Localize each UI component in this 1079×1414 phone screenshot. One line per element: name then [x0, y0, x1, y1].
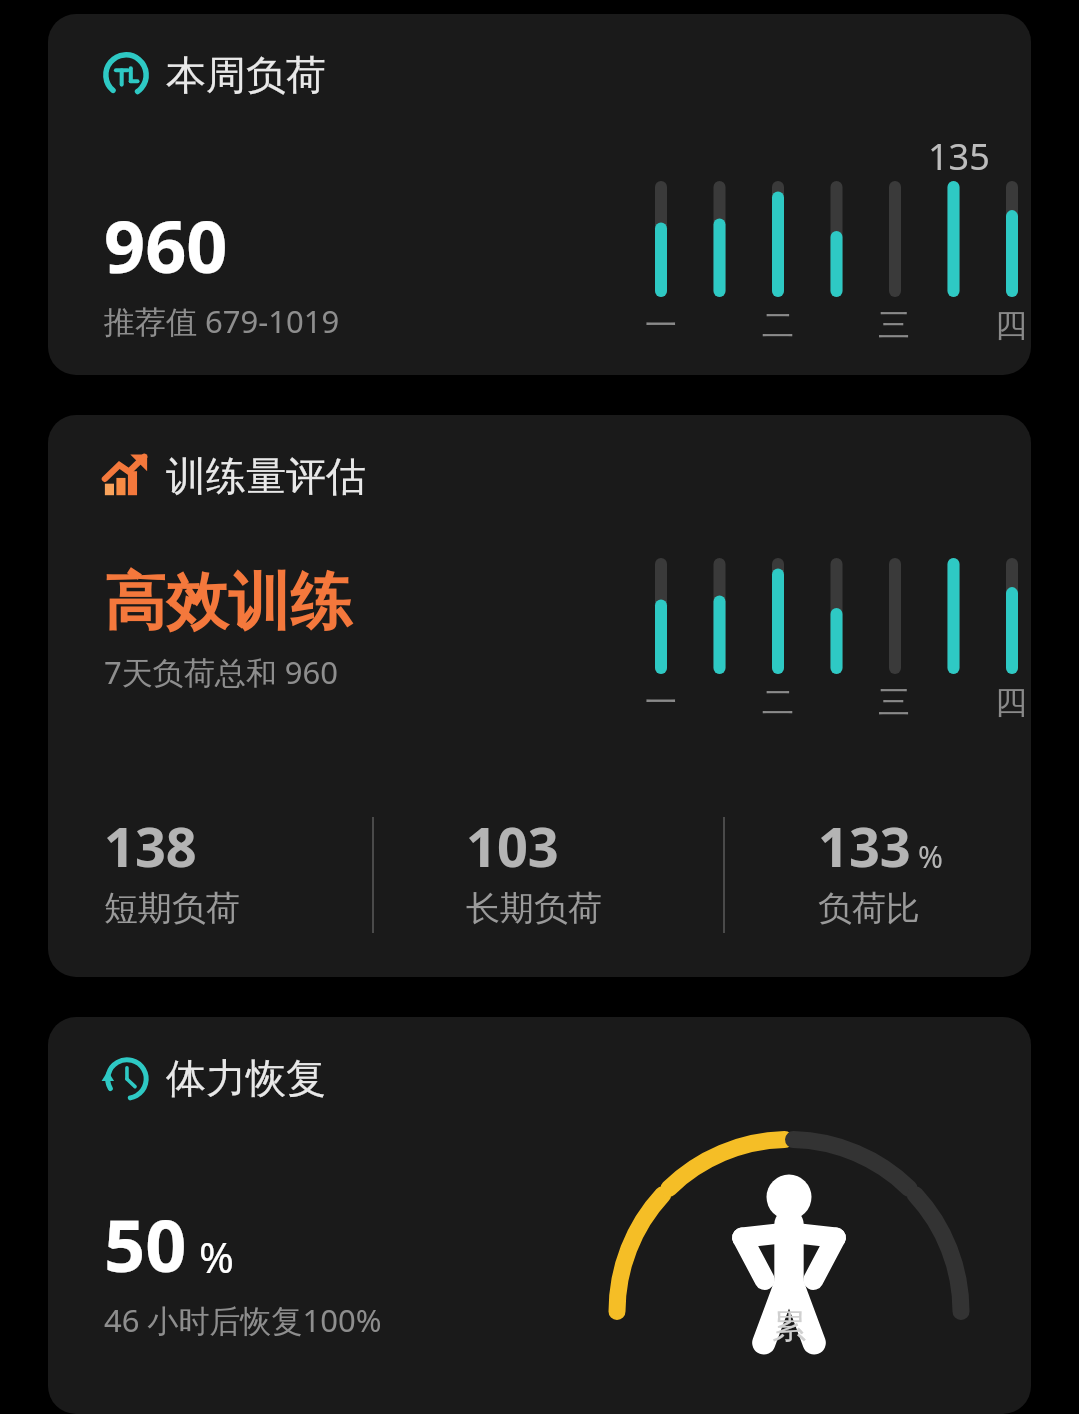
staticText: 三 — [878, 305, 910, 345]
staticText: 三 — [878, 682, 910, 722]
staticText: 负荷比 — [818, 887, 920, 930]
staticText: 960 — [104, 196, 228, 294]
staticText: % — [199, 1228, 234, 1285]
staticText: 四 — [995, 305, 1027, 345]
staticText: 短期负荷 — [104, 887, 240, 930]
staticText: 长期负荷 — [466, 887, 602, 930]
staticText: 一 — [645, 305, 677, 345]
staticText: 本周负荷 — [166, 50, 326, 100]
staticText: 二 — [762, 682, 794, 722]
button[interactable]: Training load — [48, 14, 1031, 375]
staticText: % — [918, 836, 943, 877]
staticText: 7天负荷总和 960 — [104, 651, 338, 693]
other: Training volume — [102, 452, 150, 500]
staticText: 103 — [466, 809, 559, 883]
staticText: 138 — [104, 809, 197, 883]
staticText: 133 — [818, 809, 911, 883]
staticText: 推荐值 679-1019 — [104, 300, 340, 342]
staticText: 训练量评估 — [166, 451, 366, 501]
staticText: 46 小时后恢复100% — [104, 1299, 382, 1341]
staticText: 四 — [995, 682, 1027, 722]
staticText: 50 — [104, 1195, 187, 1293]
other: Recovery — [102, 1054, 150, 1102]
other: Training load — [102, 51, 150, 99]
button[interactable]: Recovery — [48, 1017, 1031, 1414]
staticText: 累 — [589, 1305, 989, 1348]
button[interactable]: Training volume — [48, 415, 1031, 977]
staticText: 二 — [762, 305, 794, 345]
staticText: 高效训练 — [104, 563, 352, 641]
staticText: 一 — [645, 682, 677, 722]
staticText: 体力恢复 — [166, 1053, 326, 1103]
staticText: 135 — [928, 132, 990, 181]
